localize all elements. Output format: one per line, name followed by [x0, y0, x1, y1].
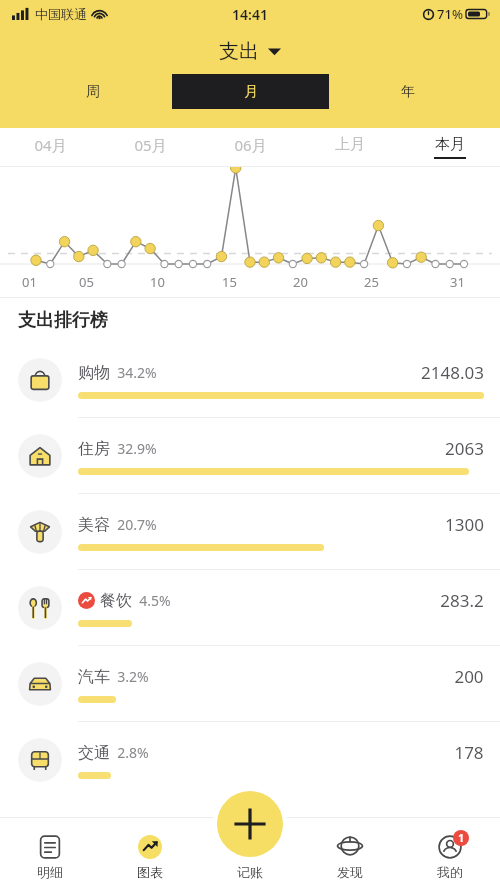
staticText: 3.2%	[117, 667, 149, 686]
staticText: 年	[401, 83, 415, 101]
staticText: 05月	[134, 135, 167, 155]
staticText: 20	[293, 273, 308, 291]
button[interactable]: 美容	[0, 494, 500, 569]
staticText: 04月	[34, 135, 67, 155]
button[interactable]: 图表	[100, 817, 200, 889]
button[interactable]: 发现	[300, 817, 400, 889]
staticText: 交通	[78, 743, 110, 763]
staticText: 05	[79, 273, 94, 291]
staticText: 购物	[78, 363, 110, 383]
staticText: 71%	[437, 5, 463, 23]
staticText: 明细	[37, 864, 63, 880]
staticText: 上月	[335, 135, 365, 154]
staticText: 1300	[445, 513, 484, 536]
staticText: 支出	[219, 39, 259, 64]
staticText: 2063	[445, 437, 484, 460]
button[interactable]: 周	[14, 74, 172, 109]
button[interactable]: 1	[400, 817, 500, 889]
button[interactable]: 本月	[400, 128, 500, 166]
staticText: 06月	[234, 135, 267, 155]
staticText: 1	[458, 831, 464, 845]
staticText: 34.2%	[117, 363, 157, 382]
staticText: 图表	[137, 864, 163, 880]
button[interactable]: 明细	[0, 817, 100, 889]
button[interactable]: 记账	[217, 791, 283, 857]
staticText: 20.7%	[117, 515, 157, 534]
button[interactable]: 记账	[200, 817, 300, 889]
button[interactable]: 餐饮	[0, 570, 500, 645]
staticText: 我的	[437, 864, 463, 880]
staticText: 10	[150, 273, 165, 291]
staticText: 记账	[237, 864, 263, 880]
staticText: 2.8%	[117, 743, 149, 762]
staticText: 4.5%	[139, 591, 171, 610]
staticText: 32.9%	[117, 439, 157, 458]
staticText: 周	[86, 83, 100, 101]
staticText: 01	[22, 273, 37, 291]
staticText: 14:41	[232, 5, 268, 24]
staticText: 餐饮	[100, 591, 132, 611]
button[interactable]: 05月	[100, 128, 200, 166]
staticText: 住房	[78, 439, 110, 459]
button[interactable]: 购物	[0, 342, 500, 417]
staticText: 31	[450, 273, 465, 291]
button[interactable]: 支出	[0, 28, 500, 74]
button[interactable]: 住房	[0, 418, 500, 493]
staticText: 汽车	[78, 667, 110, 687]
staticText: 200	[454, 665, 484, 688]
button[interactable]: 上月	[300, 128, 400, 166]
staticText: 178	[454, 741, 484, 764]
staticText: 15	[222, 273, 237, 291]
staticText: 283.2	[440, 589, 484, 612]
button[interactable]: 交通	[0, 722, 500, 797]
staticText: 美容	[78, 515, 110, 535]
button[interactable]: 月	[172, 74, 329, 109]
button[interactable]: 年	[329, 74, 486, 109]
staticText: 月	[244, 83, 258, 101]
staticText: 支出排行榜	[18, 309, 108, 332]
staticText: 中国联通	[35, 6, 87, 22]
staticText: 25	[364, 273, 379, 291]
button[interactable]: 04月	[0, 128, 100, 166]
button[interactable]: 06月	[200, 128, 300, 166]
staticText: 发现	[337, 864, 363, 880]
staticText: 本月	[435, 135, 465, 154]
button[interactable]: 汽车	[0, 646, 500, 721]
staticText: 2148.03	[421, 361, 484, 384]
